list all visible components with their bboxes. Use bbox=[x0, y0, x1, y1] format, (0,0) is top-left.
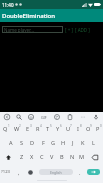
staticText: V bbox=[50, 153, 54, 161]
staticText: Y bbox=[56, 125, 60, 133]
staticText: C bbox=[40, 153, 44, 161]
button[interactable]: More options bbox=[76, 112, 89, 122]
staticText: N bbox=[70, 153, 75, 161]
staticText: O bbox=[86, 125, 91, 133]
staticText: 2 bbox=[19, 124, 21, 128]
button[interactable]: Q bbox=[0, 122, 11, 136]
staticText: 8 bbox=[80, 124, 82, 128]
button[interactable]: Backspace bbox=[87, 150, 103, 164]
button[interactable]: W bbox=[11, 122, 22, 136]
staticText: W bbox=[14, 125, 20, 133]
button[interactable]: Z bbox=[17, 150, 27, 164]
button[interactable]: S bbox=[16, 136, 27, 150]
staticText: R bbox=[36, 125, 40, 133]
staticText: 0 bbox=[100, 124, 102, 128]
button[interactable]: B bbox=[57, 150, 67, 164]
button[interactable]: G bbox=[48, 136, 58, 150]
button[interactable]: [ + ] bbox=[65, 27, 73, 33]
button[interactable]: P bbox=[93, 122, 103, 136]
staticText: ?123 bbox=[1, 169, 11, 175]
button[interactable]: M bbox=[77, 150, 87, 164]
button[interactable]: R bbox=[33, 122, 43, 136]
staticText: English bbox=[50, 170, 62, 175]
staticText: Q bbox=[3, 125, 8, 133]
staticText: F bbox=[42, 139, 45, 147]
button[interactable]: V bbox=[47, 150, 57, 164]
button[interactable]: [ ADD ] bbox=[75, 27, 90, 33]
button[interactable]: Voice input bbox=[89, 112, 102, 122]
button[interactable]: F bbox=[38, 136, 48, 150]
button[interactable]: C bbox=[37, 150, 47, 164]
button[interactable]: Clipboard bbox=[63, 112, 76, 122]
button[interactable]: X bbox=[27, 150, 37, 164]
staticText: , bbox=[18, 169, 20, 176]
button[interactable]: L bbox=[88, 136, 98, 150]
button[interactable]: Enter bbox=[87, 169, 100, 175]
staticText: 1 bbox=[8, 124, 10, 128]
button[interactable]: Back bbox=[1, 112, 13, 122]
button[interactable]: K bbox=[78, 136, 88, 150]
button[interactable]: U bbox=[63, 122, 73, 136]
staticText: J bbox=[72, 139, 74, 147]
staticText: I bbox=[77, 125, 79, 133]
button[interactable]: H bbox=[58, 136, 68, 150]
button[interactable]: Y bbox=[53, 122, 63, 136]
staticText: 9 bbox=[90, 124, 92, 128]
button[interactable]: Period bbox=[73, 165, 87, 179]
button[interactable]: Themes bbox=[50, 112, 63, 122]
button[interactable]: Shift bbox=[0, 150, 17, 164]
staticText: 11:40 bbox=[2, 2, 14, 8]
staticText: Name player... bbox=[4, 27, 34, 33]
staticText: B bbox=[60, 153, 64, 161]
staticText: E bbox=[26, 125, 30, 133]
staticText: 3 bbox=[30, 124, 32, 128]
staticText: M bbox=[79, 153, 85, 161]
button[interactable]: Emoji bbox=[25, 165, 35, 179]
staticText: X bbox=[30, 153, 34, 161]
staticText: T bbox=[46, 125, 50, 133]
button[interactable]: J bbox=[68, 136, 78, 150]
button[interactable]: E bbox=[22, 122, 33, 136]
staticText: Z bbox=[20, 153, 24, 161]
button[interactable]: Comma bbox=[12, 165, 25, 179]
staticText: D bbox=[30, 139, 35, 147]
button[interactable]: Space bbox=[39, 169, 73, 175]
staticText: S bbox=[20, 139, 24, 147]
staticText: L bbox=[92, 139, 95, 147]
staticText: G bbox=[51, 139, 56, 147]
staticText: U bbox=[66, 125, 71, 133]
button[interactable]: A bbox=[5, 136, 16, 150]
button[interactable]: O bbox=[83, 122, 93, 136]
staticText: 6 bbox=[60, 124, 62, 128]
button[interactable]: ?123 bbox=[0, 165, 12, 179]
staticText: 4 bbox=[40, 124, 42, 128]
button[interactable]: GIF bbox=[37, 112, 50, 122]
button[interactable]: Name player... bbox=[2, 26, 63, 33]
staticText: GIF bbox=[41, 115, 47, 120]
button[interactable]: D bbox=[27, 136, 38, 150]
staticText: H bbox=[61, 139, 66, 147]
button[interactable]: N bbox=[67, 150, 77, 164]
staticText: P bbox=[96, 125, 100, 133]
button[interactable]: I bbox=[73, 122, 83, 136]
staticText: . bbox=[79, 169, 81, 176]
staticText: DoubleElimination bbox=[2, 12, 56, 20]
staticText: 5 bbox=[50, 124, 52, 128]
staticText: 7 bbox=[70, 124, 72, 128]
button[interactable]: Stickers bbox=[25, 112, 37, 122]
staticText: A bbox=[9, 139, 13, 147]
button[interactable]: T bbox=[43, 122, 53, 136]
staticText: K bbox=[81, 139, 85, 147]
button[interactable]: Search bbox=[13, 112, 25, 122]
